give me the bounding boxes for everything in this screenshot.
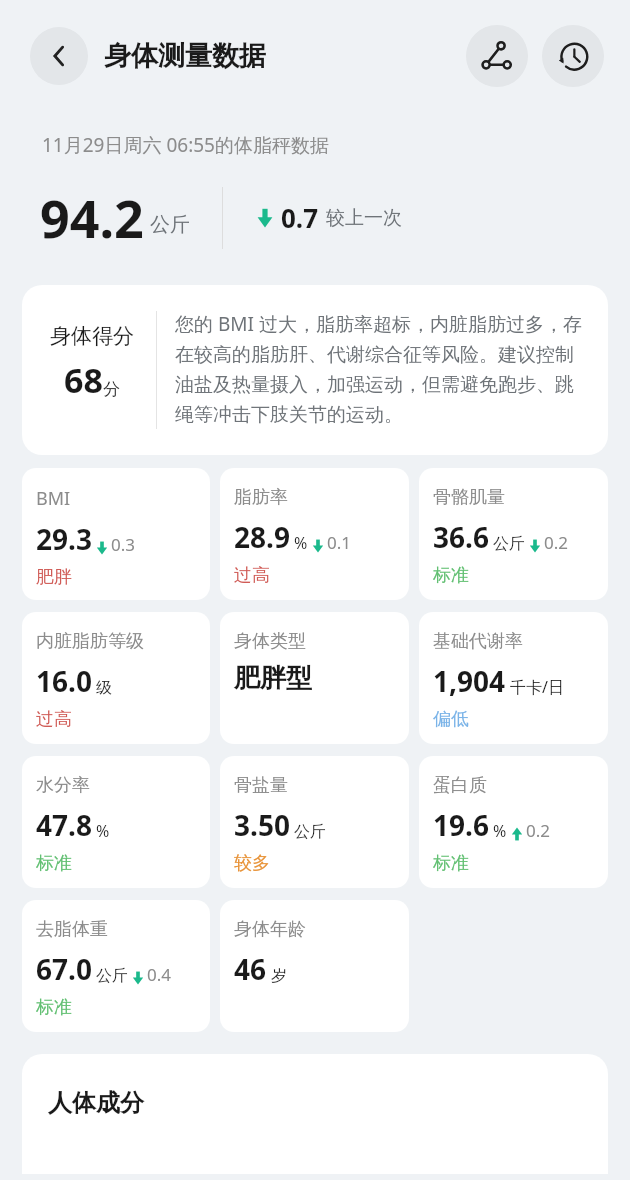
staticText: 分 [103,379,120,400]
staticText: 较多 [234,852,270,875]
button[interactable]: 身体得分 [22,285,608,455]
staticText: 基础代谢率 [433,630,523,653]
staticText: 您的 BMI 过大，脂肪率超标，内脏脂肪过多，存在较高的脂肪肝、代谢综合征等风险… [175,311,586,427]
staticText: 1,904 [433,662,506,700]
staticText: 公斤 [150,212,190,237]
staticText: 标准 [433,564,469,587]
button[interactable]: BMI [22,468,210,600]
staticText: 94.2 [40,182,144,253]
button[interactable]: 人体成分 [22,1054,608,1174]
button[interactable]: 身体类型 [220,612,409,744]
staticText: 19.6 [433,806,489,844]
staticText: 36.6 [433,518,489,556]
staticText: 偏低 [433,708,469,731]
staticText: 身体测量数据 [104,39,266,73]
button[interactable]: 脂肪率 [220,468,409,600]
staticText: 肥胖型 [234,662,312,695]
button[interactable]: 蛋白质 [419,756,608,888]
staticText: 0.4 [147,963,172,986]
staticText: 公斤 [294,822,326,842]
button[interactable]: Back [30,27,88,85]
button[interactable]: History [542,25,604,87]
staticText: 千卡/日 [510,676,564,698]
button[interactable]: 基础代谢率 [419,612,608,744]
staticText: 较上一次 [326,206,402,230]
staticText: 67.0 [36,950,92,988]
staticText: 28.9 [234,518,290,556]
button[interactable]: 骨盐量 [220,756,409,888]
button[interactable]: 身体年龄 [220,900,409,1032]
staticText: 标准 [433,852,469,875]
staticText: 去脂体重 [36,918,108,941]
button[interactable]: 内脏脂肪等级 [22,612,210,744]
button[interactable]: 水分率 [22,756,210,888]
button[interactable]: Share [466,25,528,87]
staticText: 公斤 [493,534,525,554]
button[interactable]: 骨骼肌量 [419,468,608,600]
staticText: % [493,820,507,842]
staticText: % [294,532,308,554]
staticText: 标准 [36,996,72,1019]
staticText: 过高 [36,708,72,731]
staticText: 47.8 [36,806,92,844]
staticText: 身体类型 [234,630,306,653]
staticText: 脂肪率 [234,486,288,509]
staticText: 0.3 [111,533,136,556]
staticText: 公斤 [96,966,128,986]
staticText: 蛋白质 [433,774,487,797]
staticText: 过高 [234,564,270,587]
staticText: 水分率 [36,774,90,797]
staticText: 内脏脂肪等级 [36,630,144,653]
staticText: % [96,820,110,842]
staticText: 标准 [36,852,72,875]
staticText: 身体得分 [50,323,134,349]
staticText: 岁 [271,966,287,986]
button[interactable]: 去脂体重 [22,900,210,1032]
staticText: 0.2 [526,819,551,842]
staticText: 0.2 [544,531,569,554]
staticText: 11月29日周六 06:55的体脂秤数据 [42,132,329,158]
staticText: 46 [234,950,267,988]
staticText: 16.0 [36,662,92,700]
staticText: 0.7 [281,200,319,235]
staticText: 级 [96,678,112,698]
staticText: 29.3 [36,520,92,558]
staticText: BMI [36,486,71,511]
staticText: 骨骼肌量 [433,486,505,509]
staticText: 骨盐量 [234,774,288,797]
staticText: 68 [64,357,103,403]
staticText: 3.50 [234,806,290,844]
staticText: 身体年龄 [234,918,306,941]
staticText: 人体成分 [48,1088,144,1118]
staticText: 肥胖 [36,566,72,589]
staticText: 0.1 [327,531,352,554]
